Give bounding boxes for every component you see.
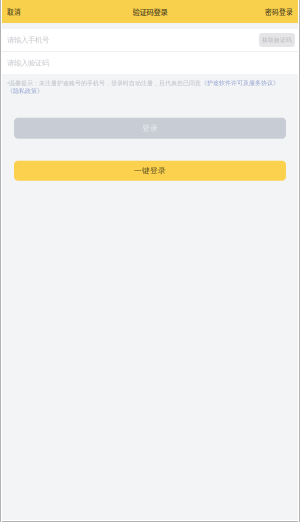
button[interactable]: 获取验证码 [259,33,295,47]
button[interactable]: 密码登录 [243,0,300,23]
button[interactable]: 《护途软件许可及服务协议》 [201,79,279,87]
staticText: 取消 [7,7,21,16]
staticText: 密码登录 [265,7,293,16]
button[interactable]: 《隐私政策》 [7,87,43,95]
staticText: 请输入验证码 [7,58,49,68]
staticText: 《隐私政策》 [7,87,43,95]
staticText: 请输入手机号 [7,35,49,45]
staticText: 《护途软件许可及服务协议》 [201,79,279,87]
staticText: 获取验证码 [262,36,292,44]
staticText: •温馨提示：未注册护途账号的手机号，登录时自动注册，且代表您已同意 [7,79,201,87]
button[interactable]: 取消 [0,0,57,23]
button[interactable]: 一键登录 [14,161,286,181]
staticText: 验证码登录 [132,6,167,17]
staticText: 登录 [142,123,158,133]
staticText: 一键登录 [134,166,166,176]
button[interactable]: 登录 [14,118,286,139]
